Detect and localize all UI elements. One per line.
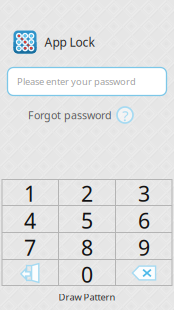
button[interactable]: Forgot password bbox=[28, 106, 134, 124]
staticText: Draw Pattern bbox=[58, 291, 115, 303]
staticText: 8 bbox=[81, 233, 93, 262]
staticText: 3 bbox=[138, 179, 150, 208]
staticText: 4 bbox=[24, 206, 36, 235]
staticText: 1 bbox=[24, 179, 36, 208]
button[interactable]: 8 bbox=[59, 233, 115, 259]
staticText: 0 bbox=[81, 260, 93, 289]
staticText: Please enter your password bbox=[17, 75, 136, 88]
staticText: ? bbox=[122, 106, 128, 125]
staticText: Forgot password bbox=[28, 108, 112, 122]
button[interactable]: 5 bbox=[59, 206, 115, 232]
staticText: 2 bbox=[81, 179, 93, 208]
button[interactable] bbox=[2, 260, 58, 286]
staticText: 9 bbox=[138, 233, 150, 262]
button[interactable]: 6 bbox=[116, 206, 172, 232]
button[interactable]: 1 bbox=[2, 179, 58, 205]
button[interactable]: Draw Pattern bbox=[2, 285, 172, 309]
button[interactable]: 7 bbox=[2, 233, 58, 259]
staticText: 7 bbox=[24, 233, 36, 262]
button[interactable]: 4 bbox=[2, 206, 58, 232]
button[interactable]: 3 bbox=[116, 179, 172, 205]
staticText: 6 bbox=[138, 206, 150, 235]
staticText: App Lock bbox=[44, 34, 94, 50]
staticText: 5 bbox=[81, 206, 93, 235]
button[interactable]: 2 bbox=[59, 179, 115, 205]
button[interactable]: 9 bbox=[116, 233, 172, 259]
button[interactable]: 0 bbox=[59, 260, 115, 286]
button[interactable] bbox=[116, 260, 172, 286]
